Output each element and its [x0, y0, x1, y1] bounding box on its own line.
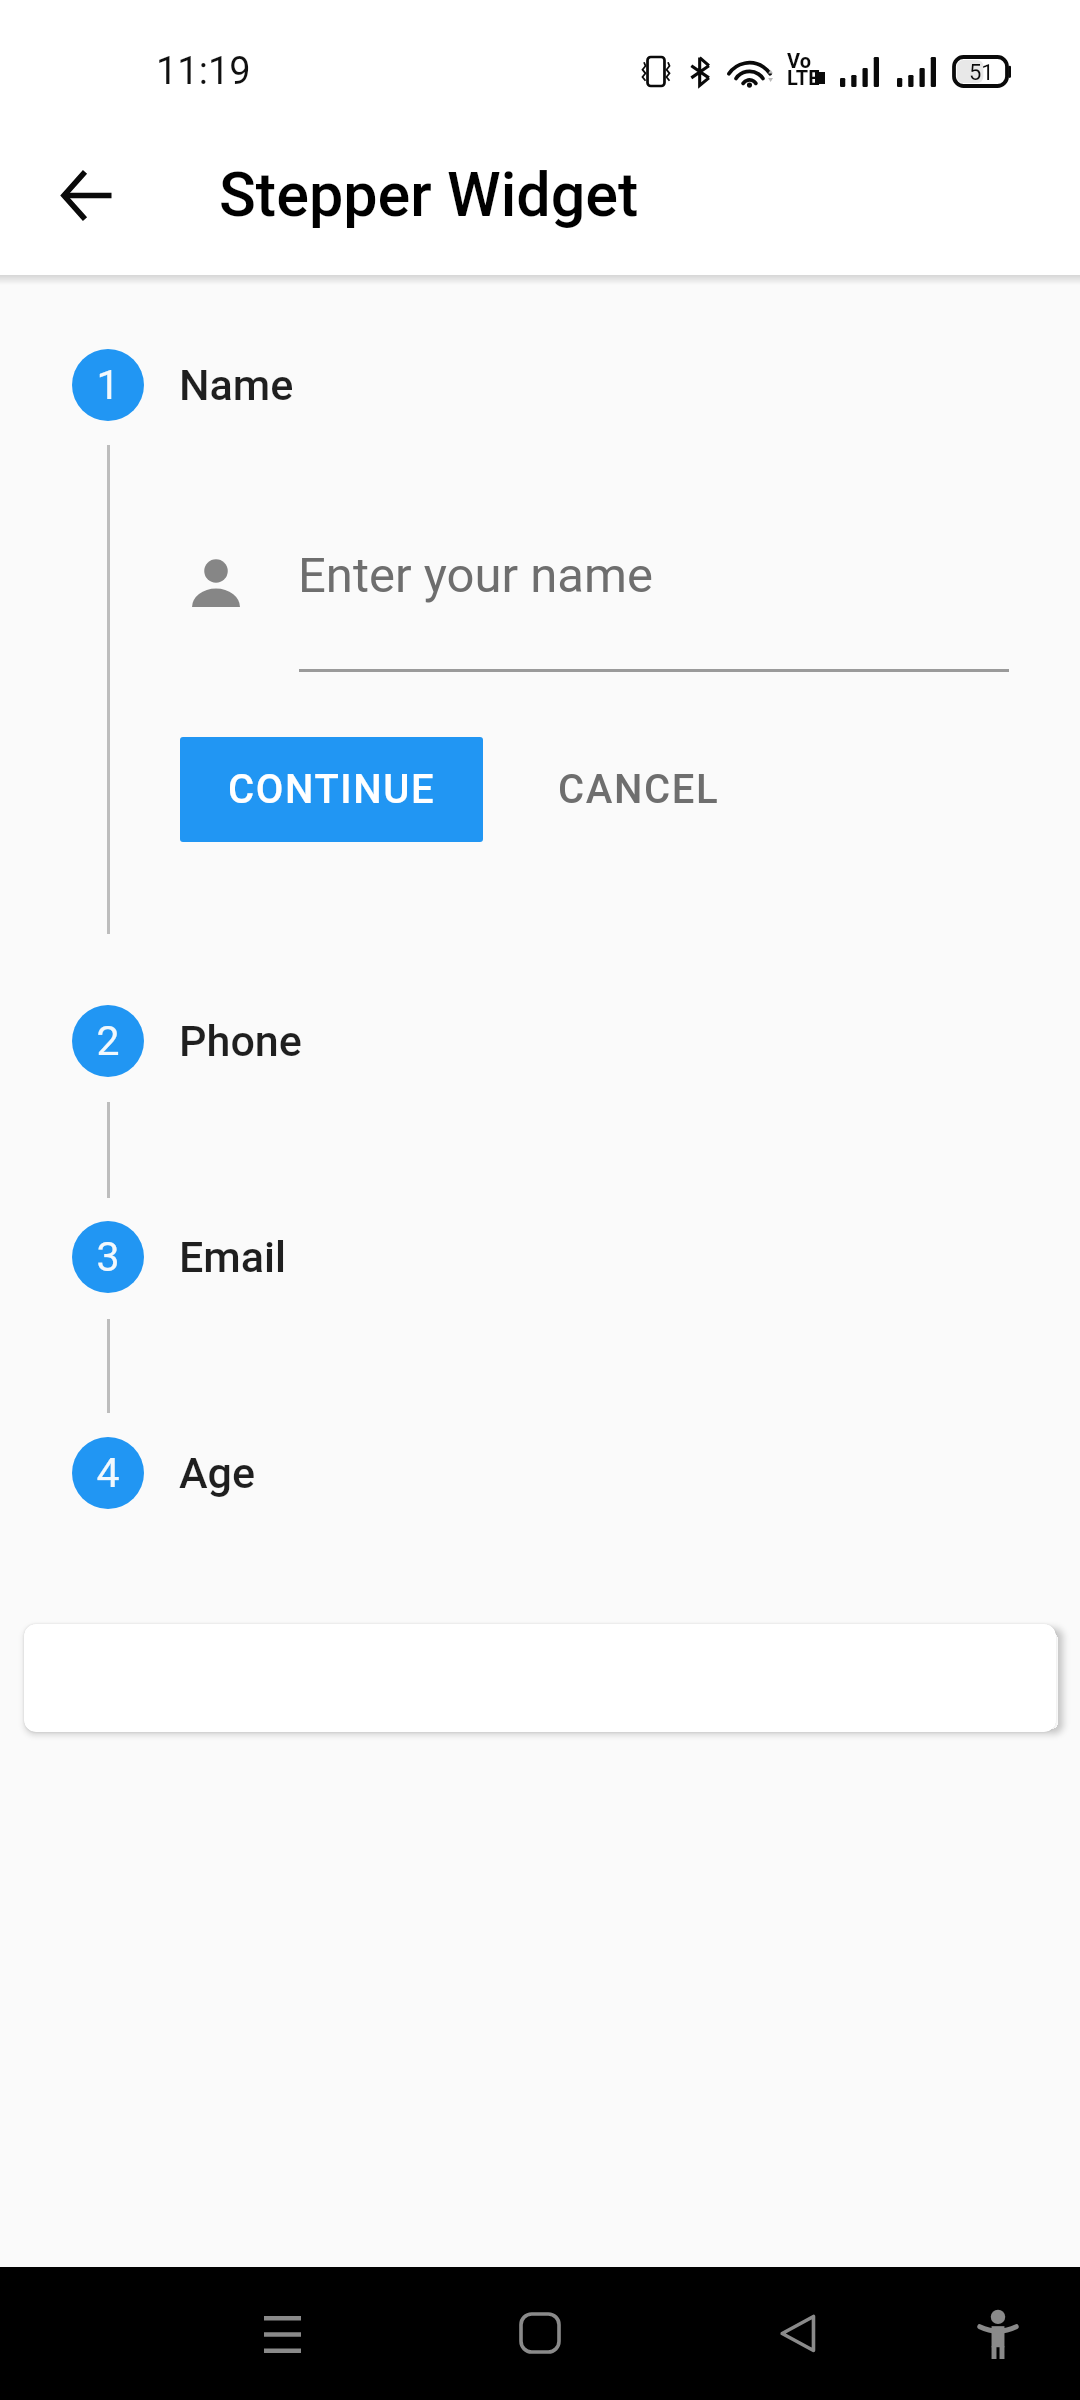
staticText: 51 — [969, 60, 994, 86]
button[interactable]: Back — [738, 2273, 858, 2393]
staticText: Stepper Widget — [219, 159, 639, 230]
button[interactable]: 1 — [0, 349, 1080, 421]
button[interactable]: CONTINUE — [180, 737, 483, 842]
staticText: Age — [179, 1448, 256, 1498]
staticText: Vo — [787, 49, 811, 72]
button[interactable]: 2 — [0, 1005, 1080, 1077]
button[interactable]: Recent apps — [222, 2274, 342, 2394]
button[interactable]: 3 — [0, 1221, 1080, 1293]
staticText: Enter your name — [298, 547, 653, 604]
staticText: 11:19 — [156, 49, 251, 94]
staticText: 3 — [96, 1233, 120, 1281]
staticText: Email — [179, 1232, 287, 1282]
staticText: CANCEL — [558, 766, 720, 813]
button[interactable]: Accessibility — [938, 2274, 1058, 2394]
staticText: 4 — [96, 1449, 120, 1497]
button[interactable]: Home — [480, 2273, 600, 2393]
staticText: Phone — [179, 1016, 302, 1066]
button[interactable]: Back — [31, 139, 143, 251]
staticText: 2 — [96, 1017, 120, 1065]
button[interactable]: 4 — [0, 1437, 1080, 1509]
staticText: CONTINUE — [228, 766, 436, 813]
staticText: Name — [179, 360, 294, 410]
staticText: LTE — [787, 66, 820, 89]
button[interactable]: CANCEL — [520, 737, 758, 842]
staticText: 1 — [96, 361, 120, 409]
